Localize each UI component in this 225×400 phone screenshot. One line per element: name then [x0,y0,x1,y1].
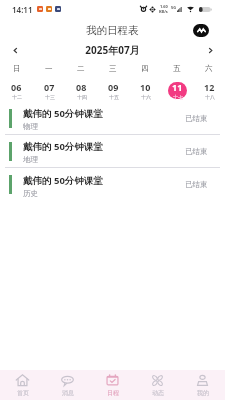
staticText: 十三 [45,94,55,100]
button[interactable]: 首页 [0,370,45,400]
button[interactable]: 10 [129,79,161,102]
staticText: 物理 [23,122,38,131]
staticText: 10 [140,81,151,93]
staticText: 5G [171,5,177,10]
staticText: 历史 [23,189,38,198]
button[interactable]: 戴伟的 50分钟课堂 [0,135,225,167]
staticText: 消息 [62,389,74,397]
button[interactable]: 我的 [180,370,225,400]
staticText: 我的 [197,389,209,397]
staticText: 十二 [12,94,22,100]
button[interactable]: 09 [97,79,129,102]
staticText: 日 [13,64,21,73]
staticText: 戴伟的 50分钟课堂 [23,107,103,120]
staticText: 08 [76,81,87,93]
staticText: 二 [77,64,85,73]
staticText: 六 [205,64,213,73]
staticText: 已结束 [185,114,208,123]
staticText: 已结束 [185,147,208,156]
staticText: KB/s [159,9,168,14]
button[interactable]: 07 [33,79,65,102]
button[interactable]: 戴伟的 50分钟课堂 [0,168,225,201]
staticText: 09 [108,81,119,93]
staticText: 2025年07月 [23,43,202,57]
staticText: 十六 [141,94,151,100]
staticText: 已结束 [185,180,208,189]
button[interactable]: 动态 [135,370,180,400]
staticText: 四 [141,64,149,73]
staticText: 十七 [173,94,183,100]
button[interactable]: 12 [193,79,225,102]
staticText: 12 [204,81,215,93]
button[interactable]: 消息 [45,370,90,400]
button[interactable]: 戴伟的 50分钟课堂 [0,102,225,134]
staticText: 十四 [77,94,87,100]
button[interactable]: 11 [161,79,193,102]
staticText: 07 [44,81,55,93]
staticText: 06 [11,81,22,93]
staticText: 11 [172,81,183,93]
button[interactable]: Account [193,24,209,37]
staticText: 五 [173,64,181,73]
button[interactable]: Next month [202,42,218,58]
staticText: 我的日程表 [86,24,139,37]
button[interactable]: 06 [0,79,33,102]
staticText: 戴伟的 50分钟课堂 [23,140,103,153]
button[interactable]: 08 [65,79,97,102]
staticText: 十五 [109,94,119,100]
staticText: 1.60 [160,4,168,9]
staticText: 14:11 [12,4,33,15]
staticText: 地理 [23,155,38,164]
staticText: 三 [109,64,117,73]
staticText: 戴伟的 50分钟课堂 [23,174,103,187]
staticText: 一 [45,64,53,73]
button[interactable]: Previous month [7,42,23,58]
staticText: 十八 [205,94,215,100]
button[interactable]: 日程 [90,370,135,400]
staticText: 日程 [107,389,119,397]
staticText: 动态 [152,389,164,397]
staticText: 首页 [17,389,29,397]
